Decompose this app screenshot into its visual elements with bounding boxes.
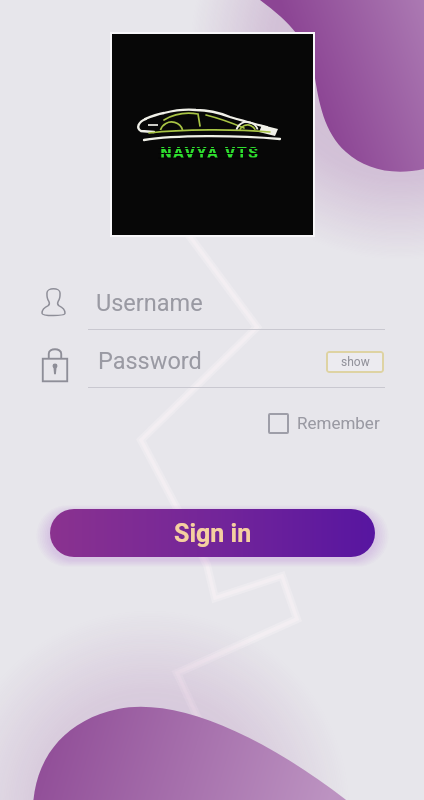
button[interactable]: Password (88, 335, 385, 387)
button[interactable]: Remember (268, 408, 380, 438)
staticText: Remember (297, 413, 380, 433)
staticText: Username (96, 289, 203, 317)
staticText: Sign in (174, 519, 252, 548)
button[interactable]: show (326, 351, 384, 373)
button[interactable]: Username (88, 277, 385, 329)
staticText: show (341, 355, 370, 369)
button[interactable]: Sign in (50, 509, 375, 557)
staticText: NAVYA VTS (160, 144, 260, 162)
staticText: Password (98, 347, 202, 375)
